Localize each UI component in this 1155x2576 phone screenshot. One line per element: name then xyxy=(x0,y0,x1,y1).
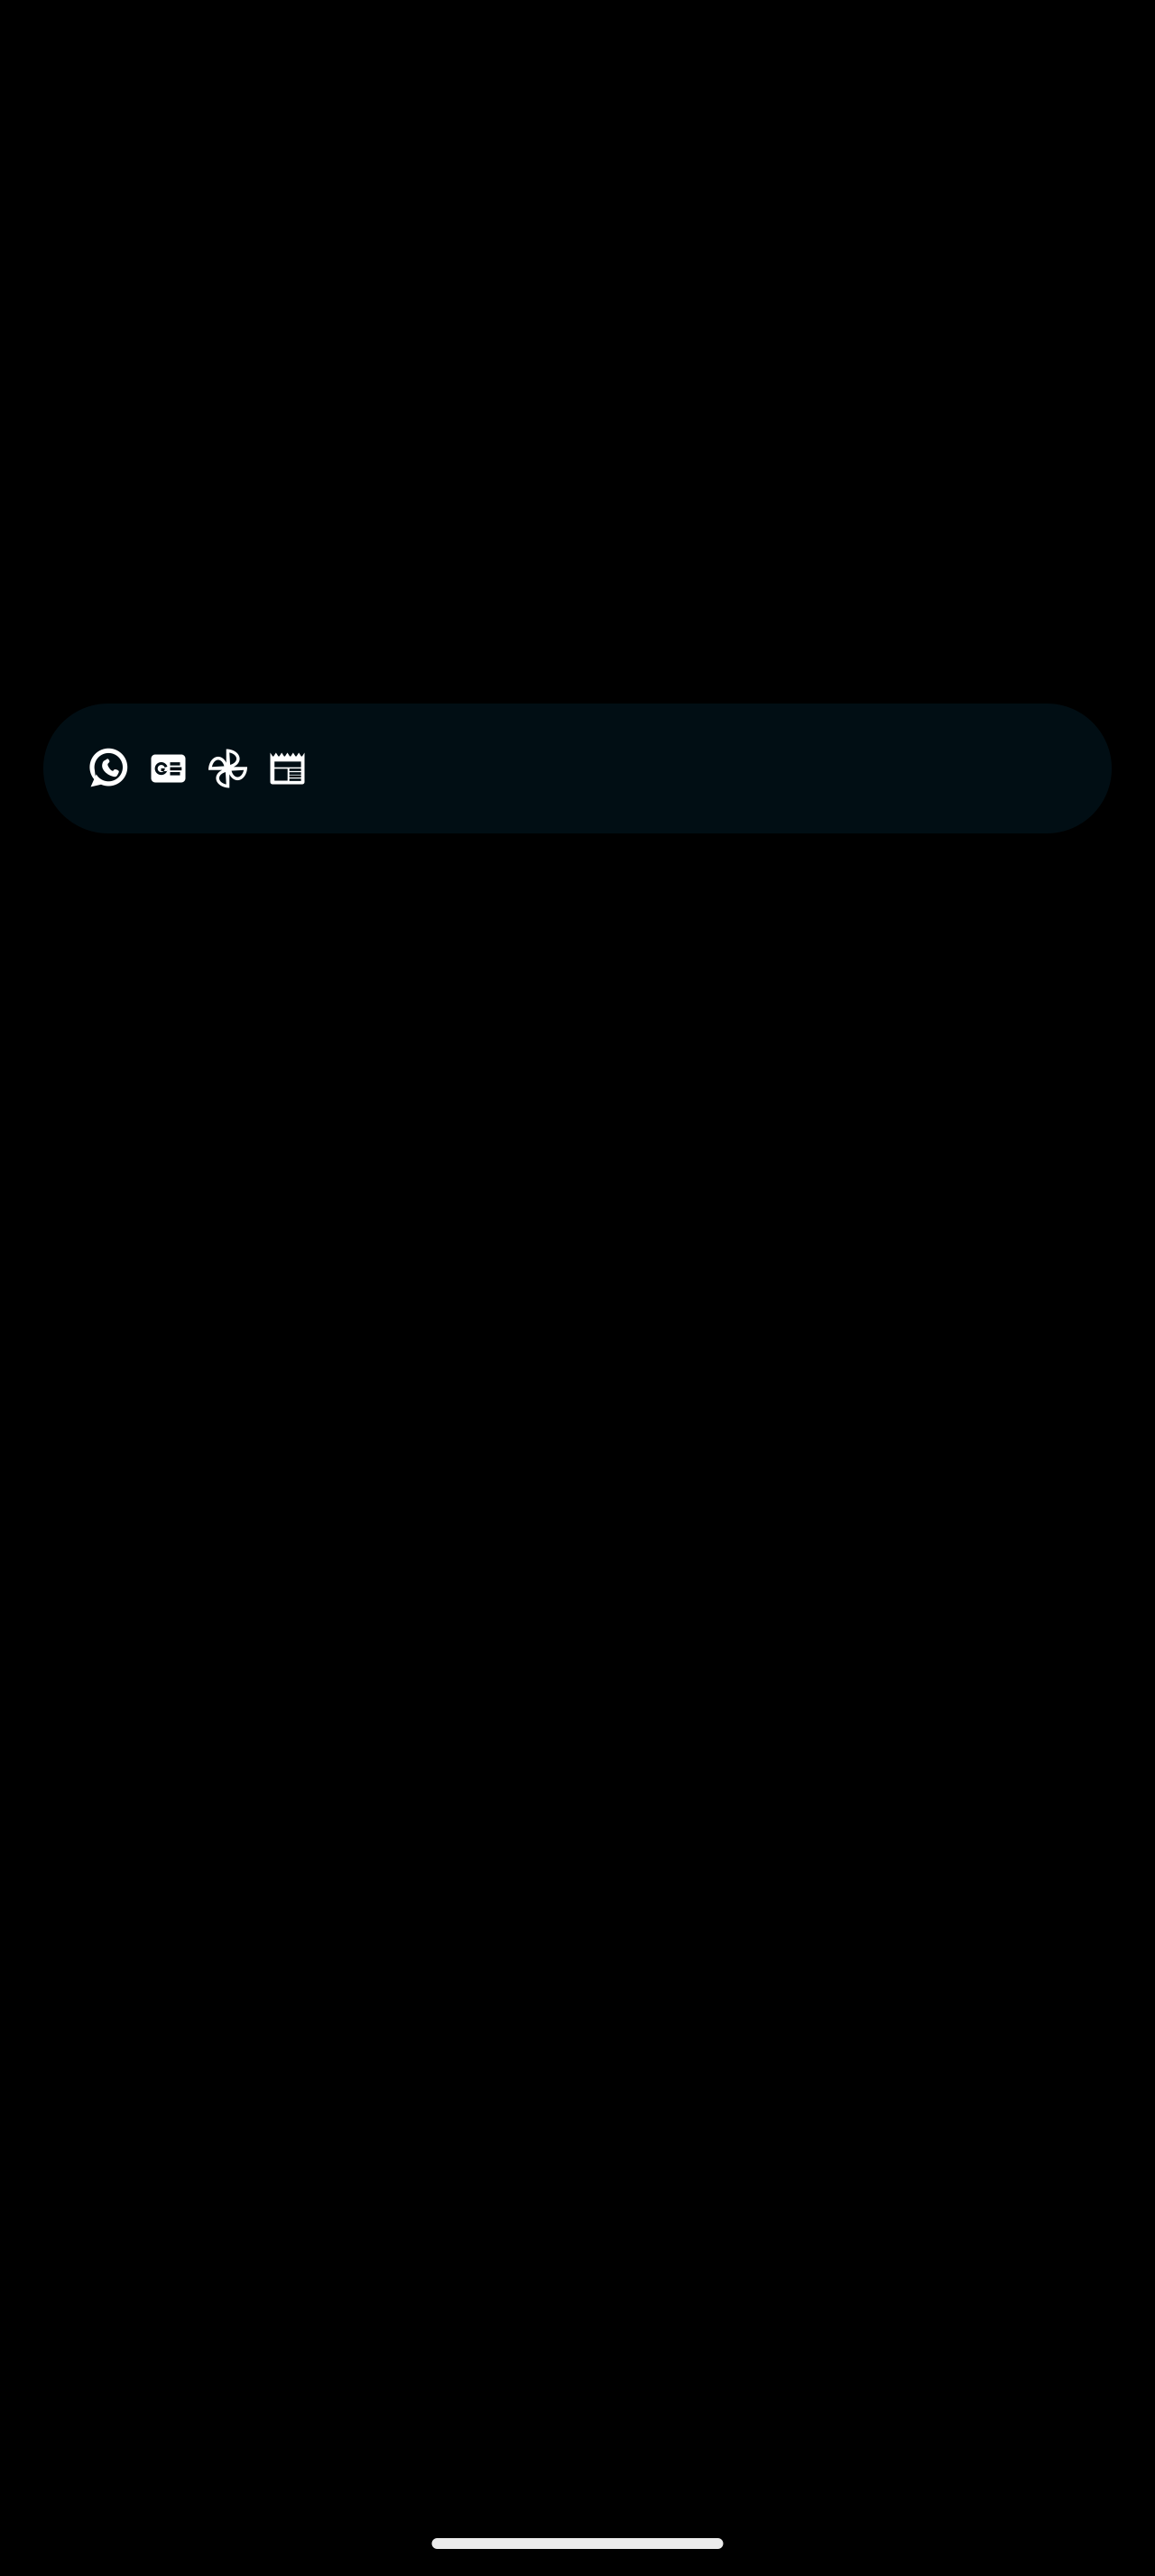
button[interactable]: WhatsApp xyxy=(79,739,139,798)
button[interactable]: Google News xyxy=(139,739,198,798)
button[interactable]: Photos xyxy=(198,739,258,798)
button[interactable]: News xyxy=(258,739,317,798)
